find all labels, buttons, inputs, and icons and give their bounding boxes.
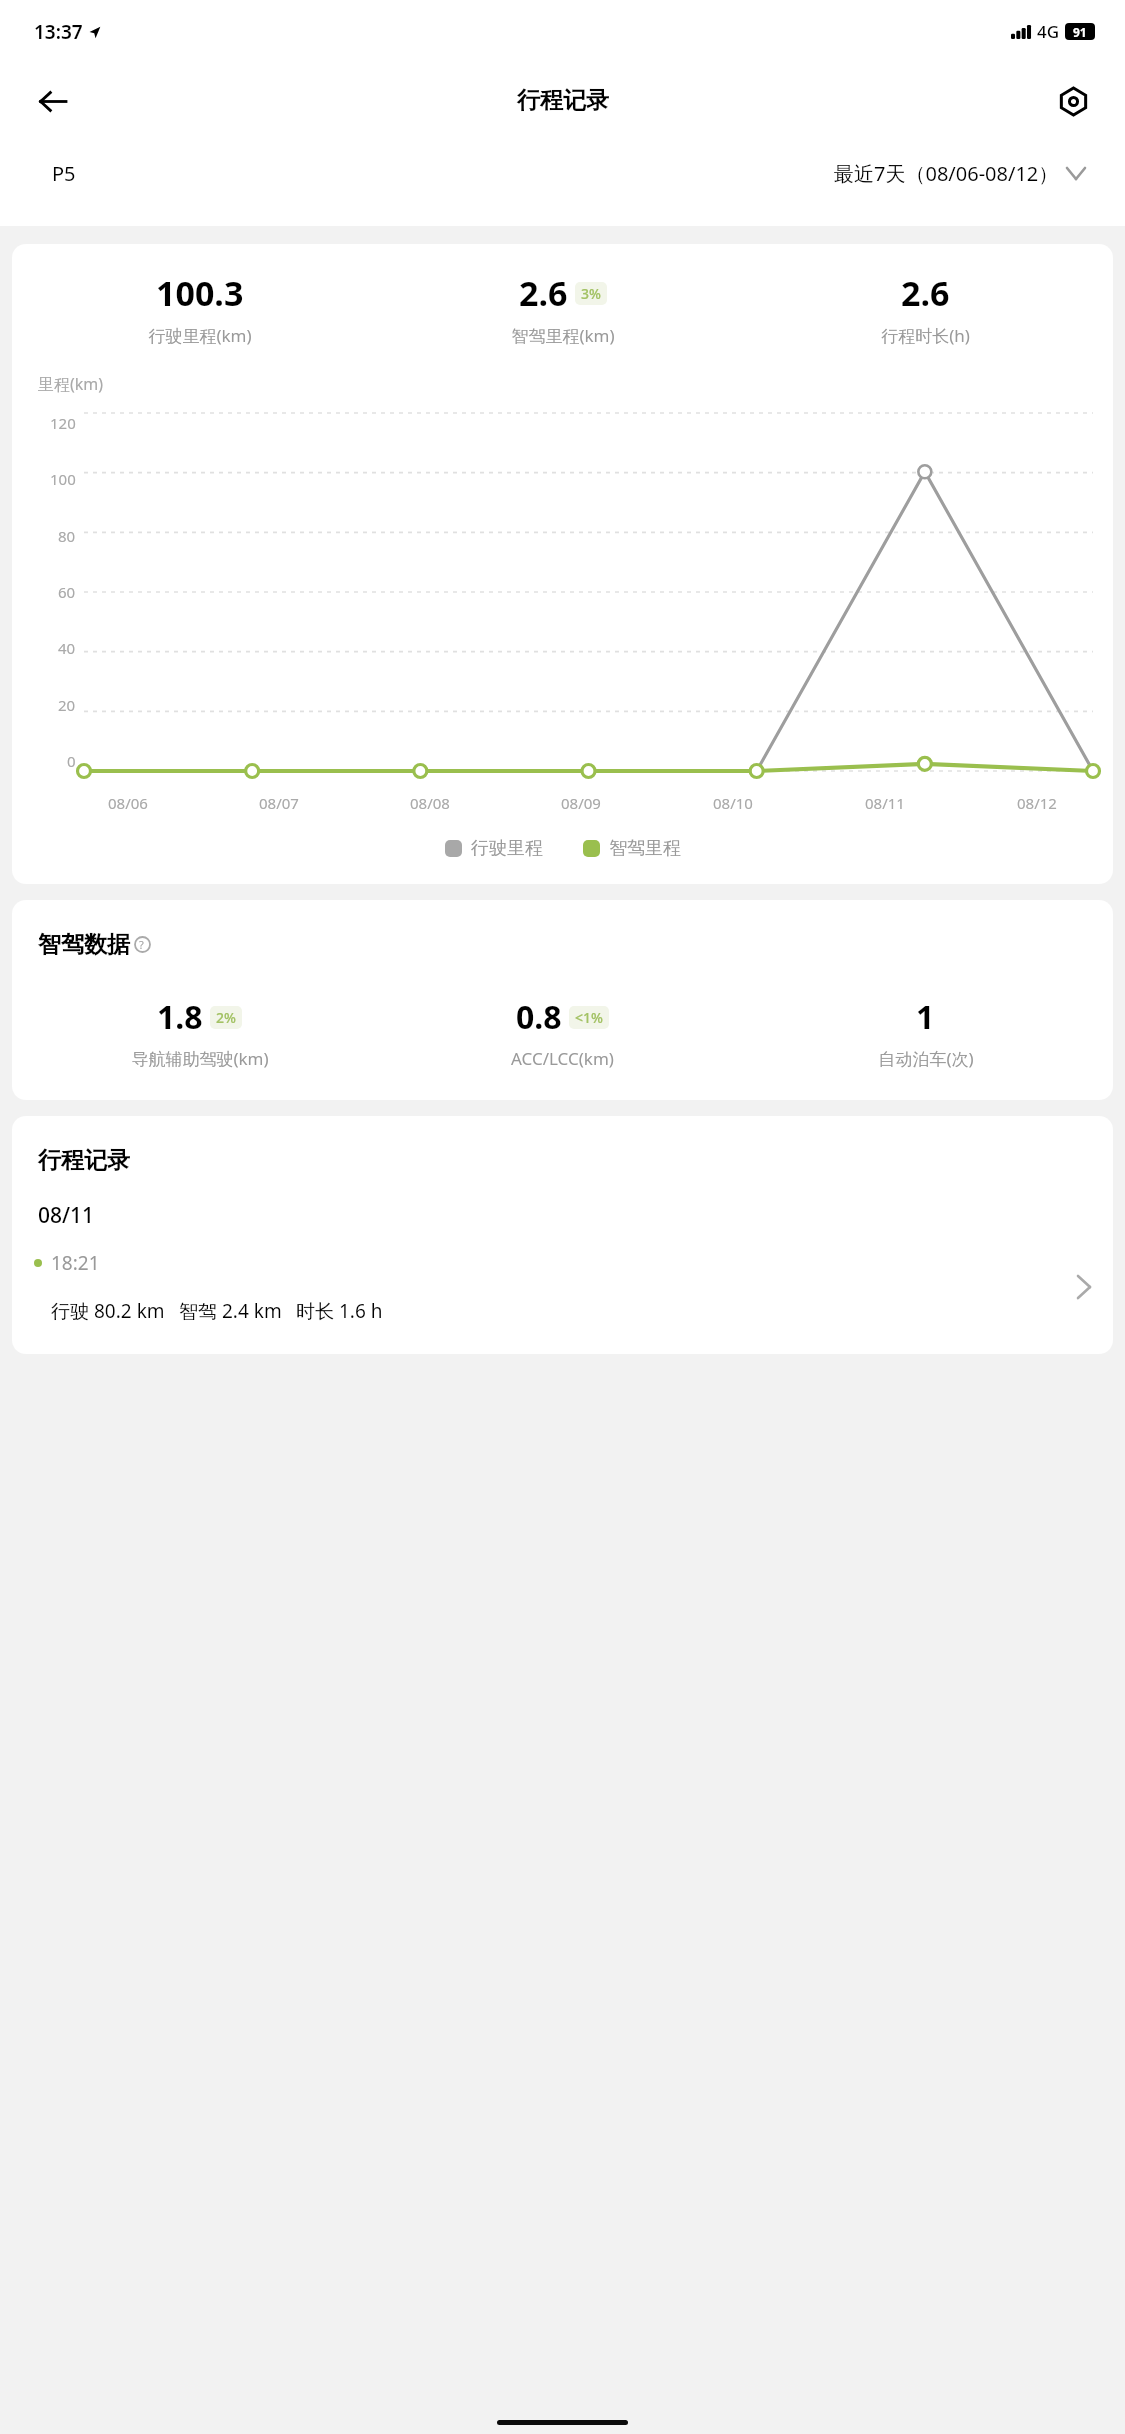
staticText: 时长 <box>296 1298 339 1324</box>
staticText: 20 <box>58 695 76 715</box>
staticText: 自动泊车(次) <box>878 1047 974 1070</box>
staticText: 行驶 <box>51 1298 94 1324</box>
button[interactable]: 18:21 <box>12 1250 1113 1324</box>
staticText: 2.6 <box>901 270 950 316</box>
staticText: 08/08 <box>410 793 450 813</box>
staticText: 13:37 <box>34 19 83 45</box>
staticText: 08/12 <box>1017 793 1057 813</box>
staticText: 行程时长(h) <box>881 324 970 347</box>
staticText: 最近7天（08/06-08/12） <box>834 160 1059 187</box>
staticText: 导航辅助驾驶(km) <box>131 1047 269 1070</box>
staticText: ? <box>139 937 144 952</box>
staticText: 行驶里程(km) <box>148 324 252 347</box>
staticText: <1% <box>575 1008 603 1027</box>
staticText: 08/11 <box>865 793 905 813</box>
staticText: 行驶里程 <box>471 837 543 860</box>
staticText: 2.6 <box>519 270 568 316</box>
staticText: 08/09 <box>561 793 601 813</box>
staticText: 120 <box>50 413 76 433</box>
staticText: 08/11 <box>38 1201 95 1230</box>
staticText: 2% <box>216 1008 236 1027</box>
staticText: 40 <box>58 638 76 658</box>
staticText: 0.8 <box>516 995 562 1039</box>
staticText: 1.8 <box>157 995 203 1039</box>
staticText: 里程(km) <box>38 373 104 395</box>
staticText: 智驾里程 <box>609 837 681 860</box>
staticText: 1 <box>916 995 935 1039</box>
staticText: 08/06 <box>108 793 148 813</box>
button[interactable]: 智驾数据 <box>38 930 156 959</box>
staticText: 3% <box>581 284 601 303</box>
staticText: 08/10 <box>713 793 753 813</box>
staticText: P5 <box>52 160 76 187</box>
other: Help <box>134 936 151 953</box>
staticText: 行程记录 <box>38 1146 130 1175</box>
staticText: 91 <box>1073 24 1087 40</box>
staticText: 行程记录 <box>517 86 609 115</box>
staticText: 80.2 km <box>94 1298 165 1324</box>
staticText: 100.3 <box>156 270 244 316</box>
button[interactable]: Settings <box>1047 75 1099 127</box>
staticText: 智驾 <box>179 1298 222 1324</box>
staticText: 60 <box>58 582 76 602</box>
staticText: 0 <box>67 751 76 771</box>
staticText: 智驾里程(km) <box>511 324 615 347</box>
staticText: ACC/LCC(km) <box>511 1047 614 1070</box>
button[interactable]: Back <box>26 75 78 127</box>
staticText: 4G <box>1037 20 1060 43</box>
button[interactable]: 最近7天（08/06-08/12） <box>834 160 1085 187</box>
staticText: 18:21 <box>51 1250 100 1276</box>
staticText: 80 <box>58 526 76 546</box>
staticText: 1.6 h <box>339 1298 383 1324</box>
staticText: 08/07 <box>259 793 299 813</box>
staticText: 2.4 km <box>222 1298 282 1324</box>
staticText: 100 <box>50 469 76 489</box>
staticText: 智驾数据 <box>38 930 130 959</box>
